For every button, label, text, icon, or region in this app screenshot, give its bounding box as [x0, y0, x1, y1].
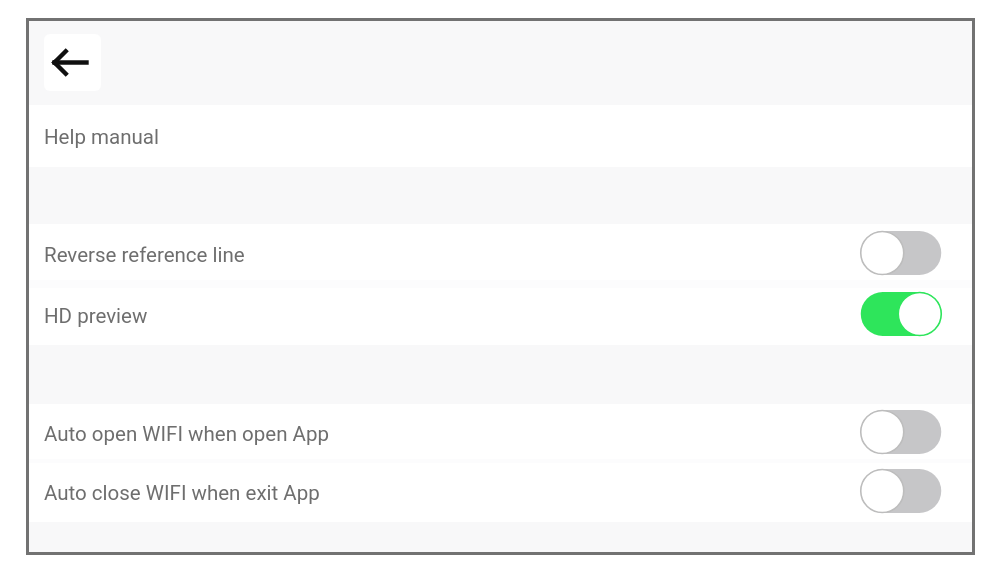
button[interactable]: Auto open WIFI when open App	[29, 404, 972, 462]
button[interactable]: Help manual	[29, 105, 972, 167]
staticText: Reverse reference line	[44, 243, 245, 267]
staticText: Auto open WIFI when open App	[44, 422, 329, 446]
button[interactable]: Auto close WIFI when exit App	[29, 462, 972, 522]
button[interactable]: HD preview	[29, 284, 972, 345]
button[interactable]: Toggle off	[859, 229, 943, 277]
button[interactable]: Back	[44, 34, 101, 91]
staticText: Auto close WIFI when exit App	[44, 481, 320, 505]
staticText: Help manual	[44, 125, 159, 149]
button[interactable]: Toggle off	[859, 467, 943, 515]
button[interactable]: Toggle on	[859, 290, 943, 338]
button[interactable]: Reverse reference line	[29, 224, 972, 284]
button[interactable]: Toggle off	[859, 408, 943, 456]
staticText: HD preview	[44, 304, 148, 328]
